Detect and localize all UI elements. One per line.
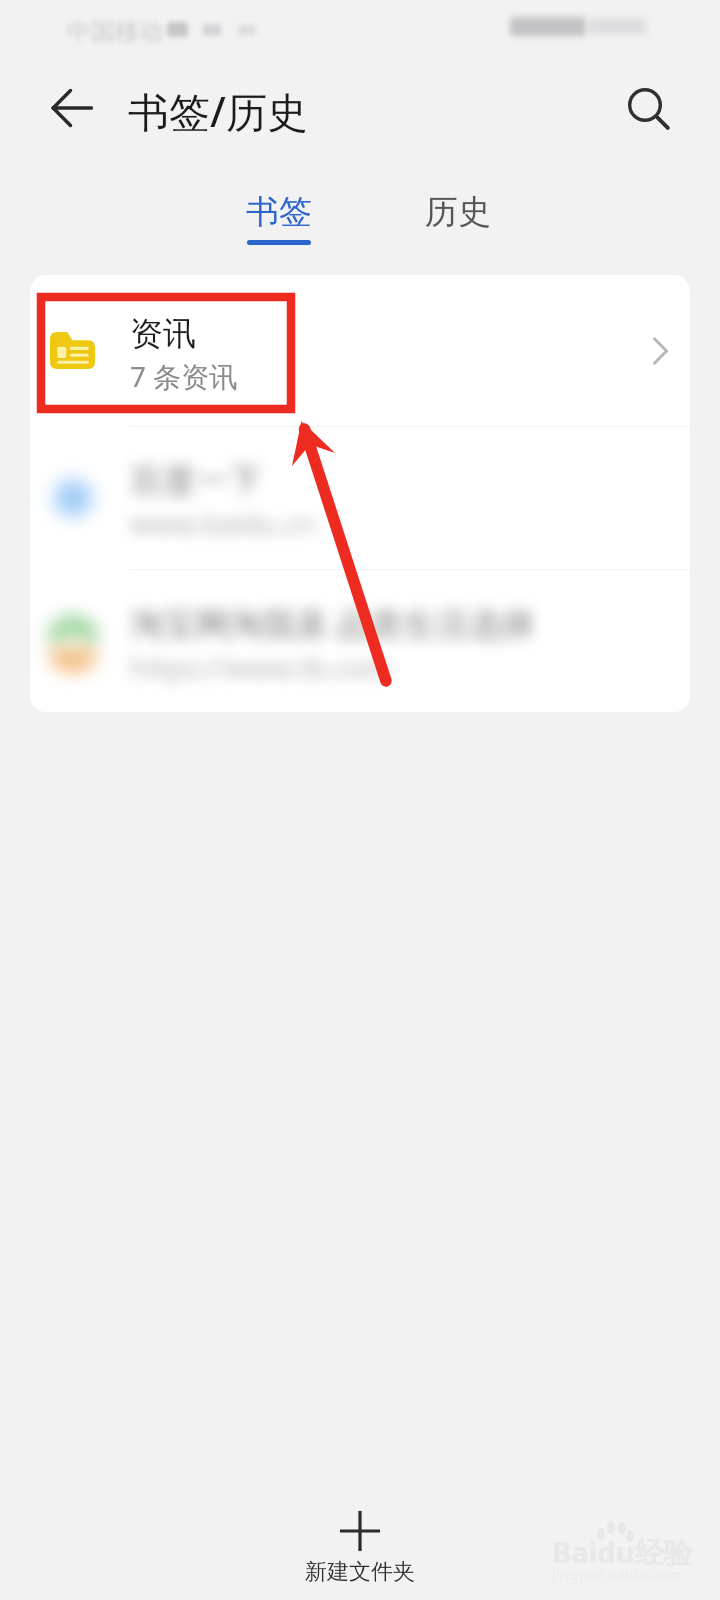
button[interactable]: 百度一下	[30, 427, 690, 569]
other: New folder	[338, 1509, 382, 1553]
button[interactable]: Back	[36, 72, 108, 144]
staticText: 历史	[425, 191, 491, 233]
staticText: 书签/历史	[128, 83, 308, 139]
staticText: 百度一下	[130, 460, 262, 502]
staticText: 书签	[246, 191, 312, 233]
button[interactable]: 资讯	[30, 275, 690, 426]
staticText: www.baidu.cn	[130, 504, 316, 542]
staticText: 7 条资讯	[130, 357, 238, 395]
staticText: Baidu经验	[552, 1532, 693, 1572]
staticText: 中国移动	[67, 17, 163, 47]
staticText: https://www.tb.com	[130, 648, 391, 686]
staticText: 新建文件夹	[305, 1558, 415, 1586]
button[interactable]: 历史	[393, 178, 523, 254]
staticText: 淘宝网淘我喜 品质生活选择	[130, 601, 535, 646]
button[interactable]: New folder	[260, 1509, 460, 1586]
button[interactable]: Search	[610, 70, 682, 142]
button[interactable]: 淘宝网淘我喜 品质生活选择	[30, 570, 690, 711]
button[interactable]: 书签	[214, 178, 344, 254]
staticText: 资讯	[130, 313, 196, 355]
